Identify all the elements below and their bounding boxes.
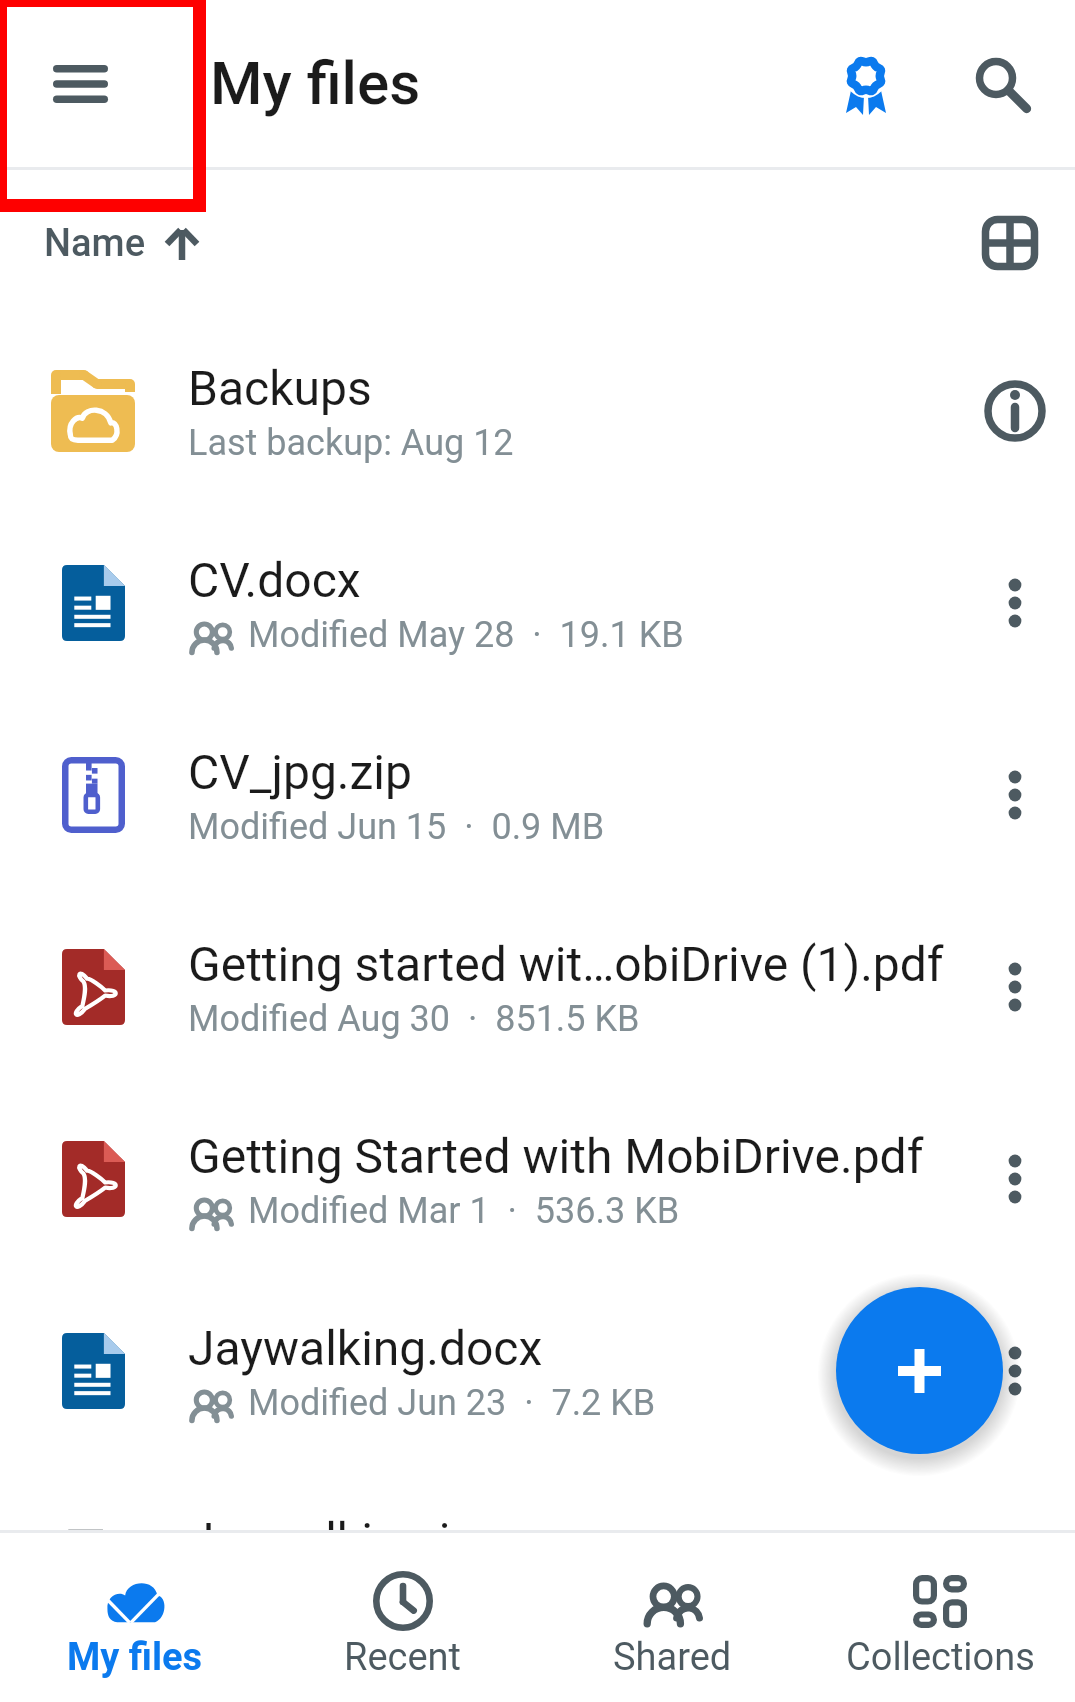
button[interactable]: More options	[955, 699, 1075, 891]
button[interactable]: More options	[955, 507, 1075, 699]
button[interactable]: CV.docx	[0, 507, 1075, 699]
staticText: Name	[44, 221, 146, 266]
button[interactable]: My files	[1, 1533, 269, 1702]
staticText: Modified Mar 1 · 536.3 KB	[248, 1190, 680, 1232]
button[interactable]: More options	[955, 1083, 1075, 1275]
staticText: Collections	[846, 1635, 1035, 1680]
button[interactable]: Search	[938, 19, 1068, 149]
button[interactable]: File info	[955, 315, 1075, 507]
staticText: Jaywalking.jpg	[188, 1512, 505, 1568]
button[interactable]: Premium	[801, 19, 931, 149]
staticText: Jaywalking.docx	[188, 1320, 543, 1376]
button[interactable]: Name	[30, 203, 212, 284]
staticText: CV.docx	[188, 552, 361, 608]
button[interactable]: Switch to grid view	[955, 188, 1065, 298]
staticText: Modified Jun 23 · 7.2 KB	[248, 1382, 656, 1424]
staticText: Shared	[613, 1635, 732, 1680]
staticText: Modified Aug 30 · 851.5 KB	[188, 998, 640, 1040]
staticText: Last backup: Aug 12	[188, 422, 514, 464]
staticText: Backups	[188, 360, 372, 416]
button[interactable]: More options	[955, 1467, 1075, 1659]
staticText: Recent	[344, 1635, 462, 1680]
staticText: My files	[67, 1635, 203, 1680]
button[interactable]: More options	[955, 891, 1075, 1083]
staticText: Getting Started with MobiDrive.pdf	[188, 1128, 924, 1184]
staticText: Modified Jun 15 · 0.9 MB	[188, 806, 605, 848]
button[interactable]: CV_jpg.zip	[0, 699, 1075, 891]
button[interactable]: More options	[955, 1275, 1075, 1467]
button[interactable]: Collections	[806, 1533, 1074, 1702]
button[interactable]: Jaywalking.docx	[0, 1275, 1075, 1467]
button[interactable]: Backups	[0, 315, 1075, 507]
button[interactable]: Getting started wit…obiDrive (1).pdf	[0, 891, 1075, 1083]
button[interactable]: Getting Started with MobiDrive.pdf	[0, 1083, 1075, 1275]
button[interactable]: Create new	[836, 1287, 1003, 1454]
button[interactable]: Shared	[538, 1533, 806, 1702]
staticText: My files	[210, 48, 421, 118]
staticText: Modified May 28 · 19.1 KB	[248, 614, 684, 656]
button[interactable]: Recent	[269, 1533, 537, 1702]
staticText: Getting started wit…obiDrive (1).pdf	[188, 936, 944, 992]
button[interactable]: Jaywalking.jpg	[0, 1467, 1075, 1659]
staticText: CV_jpg.zip	[188, 744, 412, 800]
button[interactable]: Open navigation menu	[0, 0, 157, 167]
staticText: Modified Jun 23 · 1.2 MB	[188, 1574, 605, 1616]
